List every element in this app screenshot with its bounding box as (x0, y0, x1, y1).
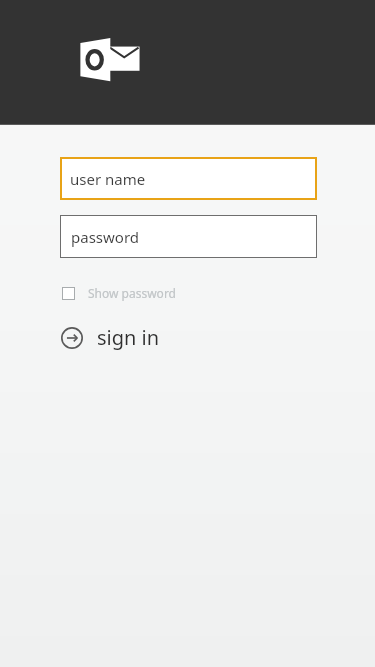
button[interactable]: user name (60, 157, 317, 200)
staticText: user name (70, 169, 146, 189)
button[interactable]: password (60, 215, 317, 258)
staticText: password (71, 227, 139, 247)
other: Sign in (61, 327, 83, 349)
button[interactable]: Sign in (55, 318, 166, 357)
staticText: sign in (97, 324, 160, 351)
staticText: Show password (88, 285, 176, 301)
button[interactable]: Show password (54, 280, 184, 306)
